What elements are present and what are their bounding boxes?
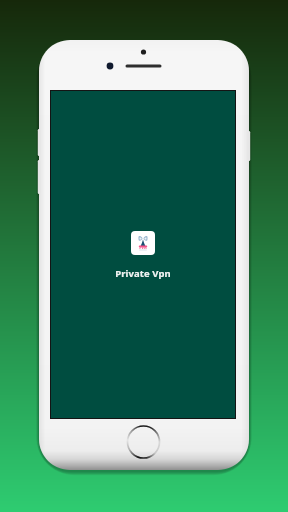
staticText: Private Vpn xyxy=(115,267,171,280)
button[interactable]: Private Vpn app icon xyxy=(131,231,155,255)
